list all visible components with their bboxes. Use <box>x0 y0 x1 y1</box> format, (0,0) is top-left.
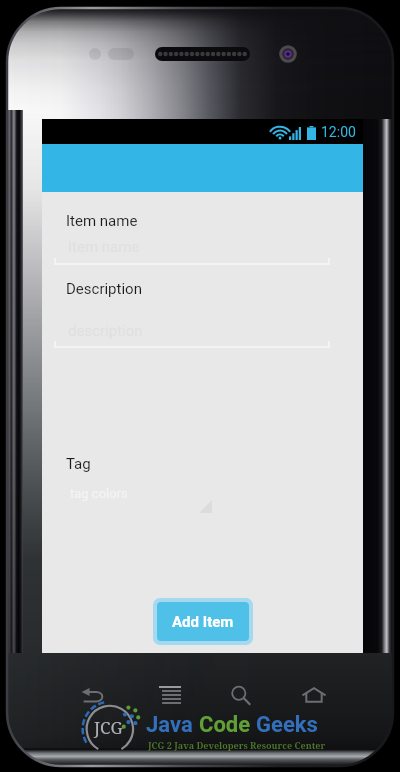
staticText: Geeks <box>256 712 318 738</box>
button[interactable]: Search <box>219 678 263 712</box>
staticText: Java <box>146 712 199 738</box>
staticText: JCG <box>94 716 123 739</box>
button[interactable]: Add Item <box>157 602 249 641</box>
button[interactable]: Home <box>292 678 336 712</box>
staticText: tag colors <box>70 486 128 501</box>
staticText: Description <box>66 280 142 298</box>
staticText: Tag <box>66 455 91 473</box>
button[interactable]: Back <box>72 678 116 712</box>
staticText: Code <box>199 712 256 738</box>
button[interactable]: Menu <box>148 678 192 712</box>
staticText: JCG 2 Java Developers Resource Center <box>148 739 326 751</box>
staticText: Item name <box>66 212 138 230</box>
staticText: 12:00 <box>321 124 356 140</box>
staticText: Add Item <box>172 613 234 631</box>
